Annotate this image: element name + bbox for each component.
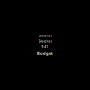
staticText: Groceries xyxy=(38,40,51,43)
staticText: Budget xyxy=(37,51,53,56)
staticText: 9:41 xyxy=(41,45,48,49)
staticText: Groceries xyxy=(38,34,51,37)
